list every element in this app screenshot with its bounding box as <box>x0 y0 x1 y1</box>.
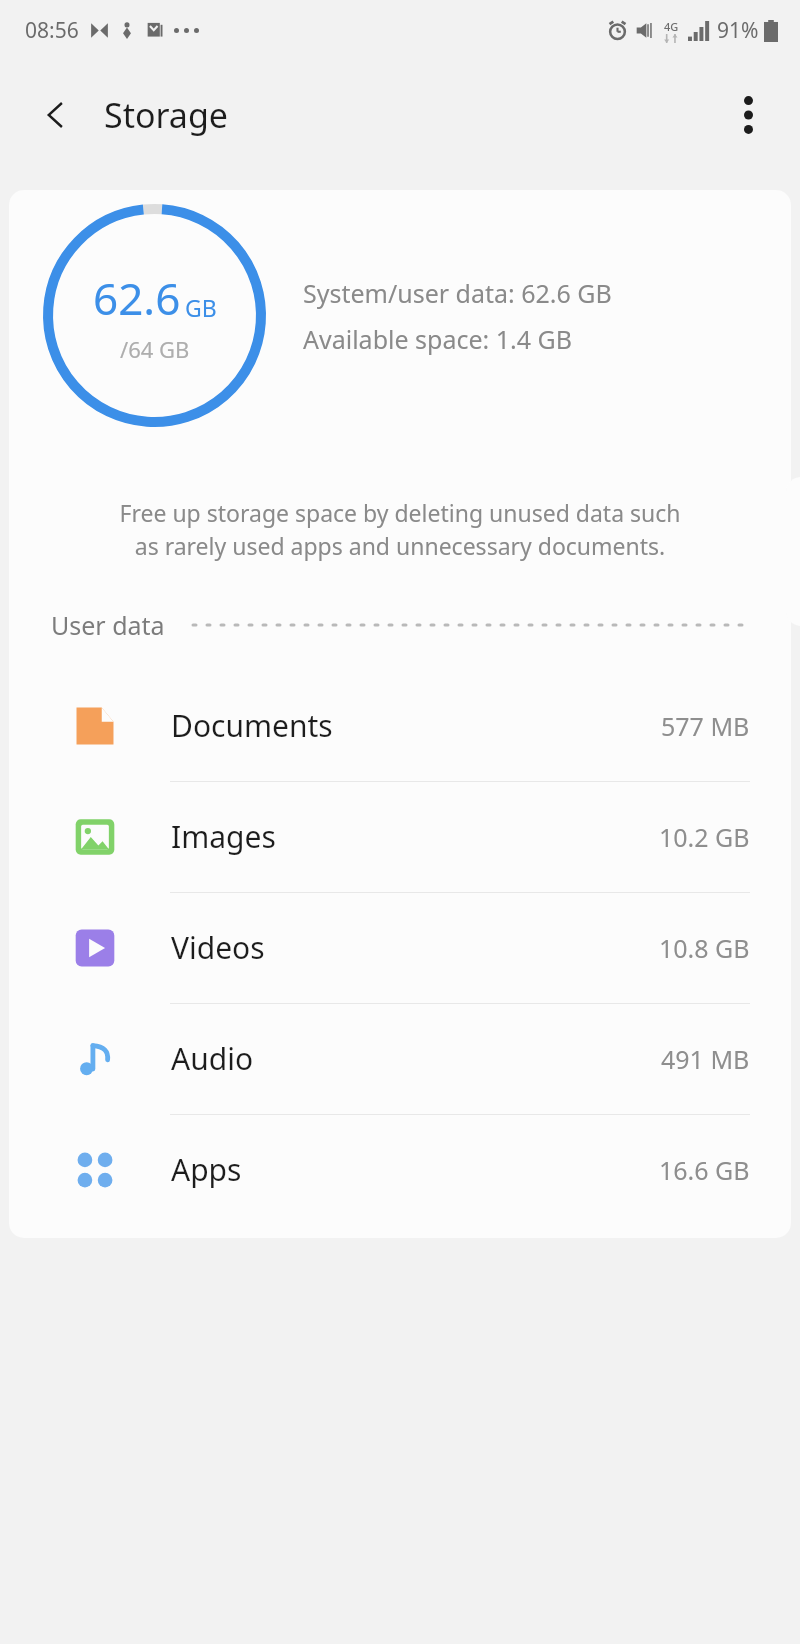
staticText: Storage <box>104 92 229 138</box>
staticText: 491 MB <box>661 1042 750 1076</box>
staticText: Documents <box>171 705 661 746</box>
staticText: 10.2 GB <box>659 820 750 854</box>
button[interactable]: Videos <box>9 892 791 1003</box>
button[interactable]: Back <box>30 89 82 141</box>
button[interactable]: More options <box>720 87 776 143</box>
staticText: 16.6 GB <box>659 1153 750 1187</box>
button[interactable]: Audio <box>9 1003 791 1114</box>
button[interactable]: Images <box>9 781 791 892</box>
staticText: 62.6 <box>93 268 181 328</box>
staticText: Images <box>171 816 659 857</box>
staticText: GB <box>185 292 217 323</box>
staticText: Videos <box>171 927 659 968</box>
staticText: Available space: 1.4 GB <box>303 322 572 356</box>
staticText: 08:56 <box>25 16 79 45</box>
staticText: Apps <box>171 1149 659 1190</box>
staticText: 10.8 GB <box>659 931 750 965</box>
staticText: /64 GB <box>120 334 190 364</box>
staticText: 4G <box>664 19 679 34</box>
staticText: Audio <box>171 1038 661 1079</box>
staticText: Free up storage space by deleting unused… <box>9 497 791 562</box>
button[interactable]: Apps <box>9 1114 791 1225</box>
staticText: 91% <box>717 16 759 45</box>
staticText: User data <box>51 608 165 642</box>
staticText: 577 MB <box>661 709 750 743</box>
staticText: System/user data: 62.6 GB <box>303 276 612 310</box>
button[interactable]: Documents <box>9 670 791 781</box>
